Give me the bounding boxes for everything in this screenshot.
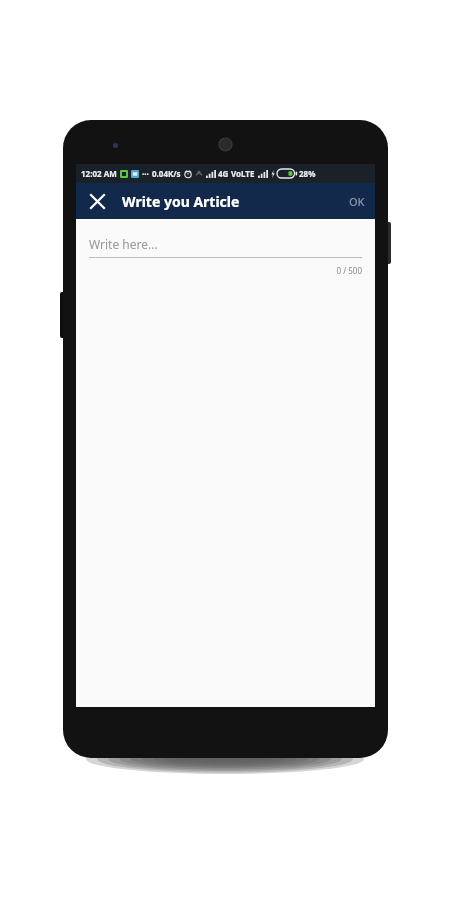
button[interactable]: Close	[82, 186, 112, 216]
staticText: 4G	[218, 168, 229, 179]
staticText: 28%	[299, 168, 316, 179]
staticText: 0.04K/s	[152, 168, 181, 179]
staticText: VoLTE	[231, 168, 255, 179]
button[interactable]: OK	[339, 187, 375, 216]
staticText: Write here...	[89, 236, 158, 252]
staticText: ···	[142, 168, 149, 179]
staticText: 12:02 AM	[81, 168, 117, 179]
staticText: 0 / 500	[89, 265, 362, 276]
staticText: Write you Article	[122, 192, 240, 211]
button[interactable]: Write here...	[89, 236, 362, 258]
staticText: OK	[349, 194, 365, 209]
